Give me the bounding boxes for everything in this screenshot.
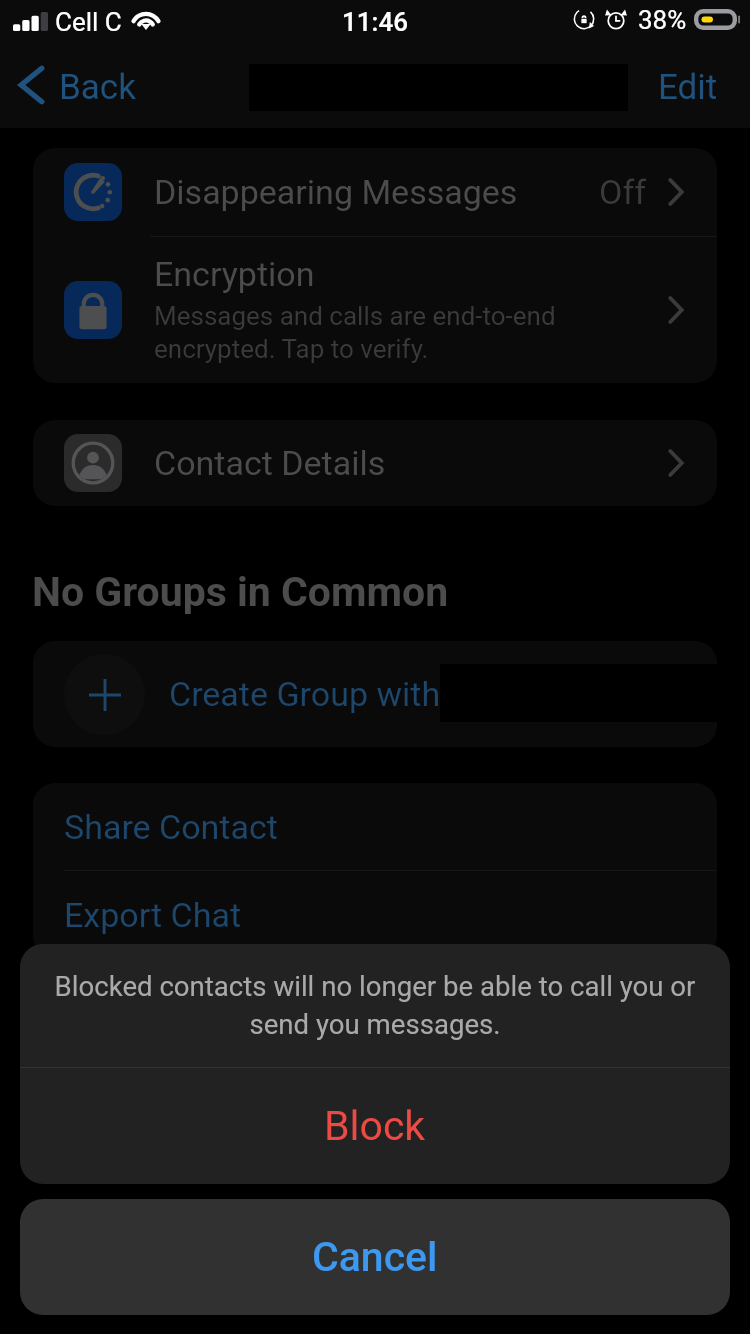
staticText: 38% (638, 5, 687, 35)
button[interactable]: Contact Details (33, 420, 717, 506)
staticText: Export Chat (64, 895, 242, 935)
other: Alarm (605, 8, 627, 30)
staticText: Cell C (55, 7, 122, 37)
button[interactable]: Encryption (33, 237, 717, 383)
button[interactable]: Share Contact (33, 783, 717, 870)
button[interactable]: Export Chat (33, 871, 717, 958)
staticText: 11:46 (342, 7, 408, 37)
staticText: Off (599, 172, 647, 212)
staticText: Contact Details (154, 443, 386, 483)
staticText: Back (59, 67, 136, 108)
staticText: Share Contact (64, 807, 278, 847)
staticText: Cancel (312, 1233, 438, 1281)
button[interactable]: Edit (644, 60, 736, 128)
staticText: Block (324, 1102, 426, 1150)
staticText: Messages and calls are end-to-end encryp… (154, 301, 644, 364)
other: Battery 38 percent (694, 9, 742, 30)
button[interactable]: Cancel (20, 1199, 730, 1315)
other: Rotation lock (573, 8, 595, 30)
staticText: Encryption (154, 254, 315, 294)
staticText: Blocked contacts will no longer be able … (36, 970, 714, 1041)
staticText: Create Group with (169, 674, 441, 714)
staticText: Disappearing Messages (154, 172, 518, 212)
staticText: Edit (658, 67, 718, 108)
button[interactable]: Disappearing Messages (33, 148, 717, 236)
button[interactable]: Create Group with (33, 641, 717, 747)
button[interactable]: Back (8, 60, 146, 128)
staticText: No Groups in Common (32, 568, 449, 616)
button[interactable]: Block (20, 1068, 730, 1184)
